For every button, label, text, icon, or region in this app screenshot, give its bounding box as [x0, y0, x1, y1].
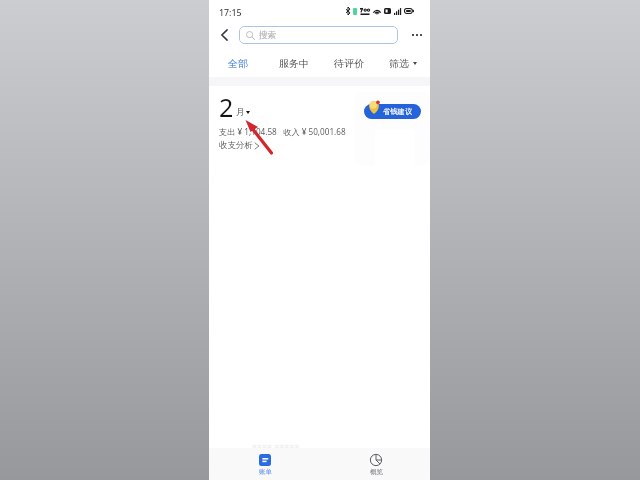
button[interactable]: 概览: [360, 454, 392, 476]
button[interactable]: 服务中: [279, 54, 309, 72]
staticText: 收支分析: [219, 140, 253, 151]
staticText: 概览: [370, 468, 383, 476]
button[interactable]: 待评价: [334, 54, 364, 72]
staticText: 搜索: [259, 30, 277, 41]
staticText: 服务中: [279, 57, 309, 70]
button[interactable]: 收支分析: [219, 140, 259, 151]
staticText: 账单: [259, 468, 272, 476]
staticText: 全部: [228, 57, 248, 70]
staticText: 2: [219, 90, 234, 124]
button[interactable]: Back: [213, 24, 235, 45]
button[interactable]: 全部: [228, 54, 248, 72]
staticText: 某某某某 某某某某某: [252, 444, 300, 451]
button[interactable]: More options: [407, 25, 427, 45]
staticText: 月: [236, 107, 245, 118]
staticText: 支出 ¥ 1,104.58 收入 ¥ 50,001.68: [219, 126, 346, 137]
button[interactable]: 省钱建议: [364, 104, 421, 119]
button[interactable]: 账单: [249, 454, 281, 476]
staticText: 筛选: [389, 57, 409, 70]
staticText: 17:15: [219, 7, 242, 19]
staticText: 待评价: [334, 57, 364, 70]
button[interactable]: 筛选: [389, 54, 417, 72]
staticText: 省钱建议: [383, 107, 413, 116]
button[interactable]: 搜索: [239, 26, 398, 44]
